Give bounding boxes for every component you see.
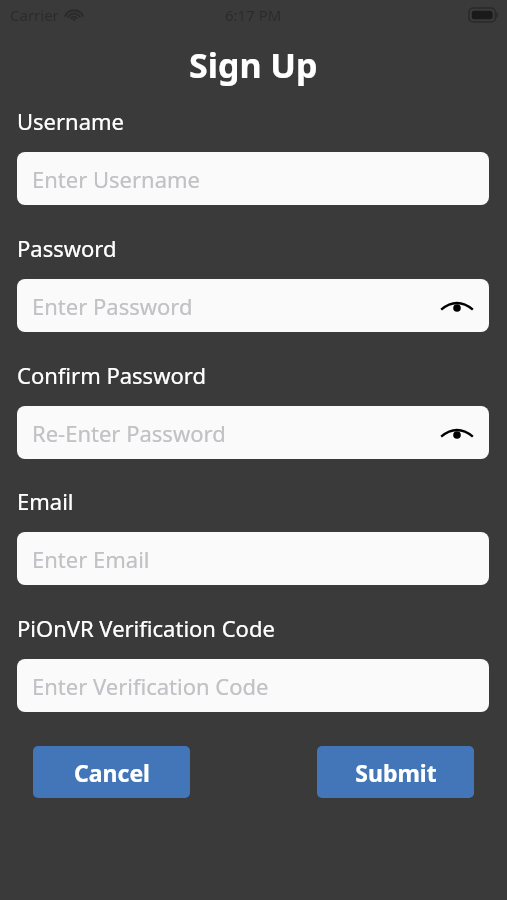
button[interactable]: Show password xyxy=(435,284,479,328)
staticText: Submit xyxy=(355,757,437,788)
staticText: Cancel xyxy=(74,757,150,788)
staticText: Confirm Password xyxy=(17,360,206,390)
staticText: Enter Username xyxy=(32,164,201,194)
staticText: Carrier xyxy=(10,5,59,25)
button[interactable]: Enter Username xyxy=(17,152,489,205)
button[interactable]: Enter Email xyxy=(17,532,489,585)
staticText: Enter Verification Code xyxy=(32,671,269,701)
staticText: Email xyxy=(17,486,74,516)
button[interactable]: Enter Verification Code xyxy=(17,659,489,712)
button[interactable]: Re-Enter Password xyxy=(17,406,489,459)
button[interactable]: Submit xyxy=(317,746,474,798)
staticText: Sign Up xyxy=(189,42,318,88)
staticText: Username xyxy=(17,106,125,136)
staticText: Re-Enter Password xyxy=(32,418,226,448)
staticText: Enter Password xyxy=(32,291,193,321)
button[interactable]: Enter Password xyxy=(17,279,489,332)
staticText: Enter Email xyxy=(32,544,150,574)
staticText: Password xyxy=(17,233,117,263)
staticText: 6:17 PM xyxy=(225,5,282,25)
button[interactable]: Cancel xyxy=(33,746,190,798)
staticText: PiOnVR Verification Code xyxy=(17,613,275,643)
button[interactable]: Show password xyxy=(435,411,479,455)
